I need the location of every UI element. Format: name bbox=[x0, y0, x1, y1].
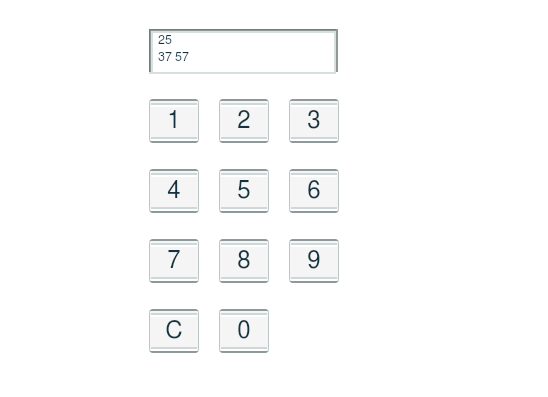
staticText: 2 bbox=[237, 109, 251, 133]
staticText: 0 bbox=[237, 319, 251, 343]
button[interactable]: 9 bbox=[289, 239, 339, 283]
button[interactable]: 0 bbox=[219, 309, 269, 353]
button[interactable]: 8 bbox=[219, 239, 269, 283]
button[interactable]: 2 bbox=[219, 99, 269, 143]
button[interactable]: 1 bbox=[149, 99, 199, 143]
button[interactable]: 7 bbox=[149, 239, 199, 283]
button[interactable]: 5 bbox=[219, 169, 269, 213]
staticText: 4 bbox=[167, 179, 181, 203]
button[interactable]: 3 bbox=[289, 99, 339, 143]
staticText: 1 bbox=[167, 109, 181, 133]
staticText: 8 bbox=[237, 249, 251, 273]
button[interactable]: 6 bbox=[289, 169, 339, 213]
button[interactable]: 4 bbox=[149, 169, 199, 213]
staticText: 5 bbox=[237, 179, 251, 203]
button[interactable]: C bbox=[149, 309, 199, 353]
staticText: 3 bbox=[307, 109, 321, 133]
staticText: C bbox=[165, 319, 183, 343]
staticText: 6 bbox=[307, 179, 321, 203]
staticText: 9 bbox=[307, 249, 321, 273]
staticText: 7 bbox=[167, 249, 181, 273]
staticText: 25 37 57 bbox=[158, 34, 189, 64]
